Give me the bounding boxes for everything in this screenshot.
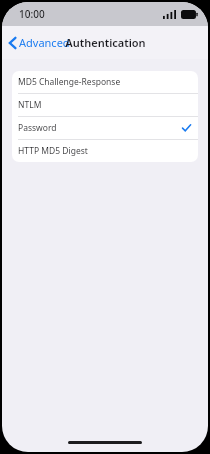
button[interactable]: MD5 Challenge-Response — [12, 71, 198, 93]
staticText: NTLM — [18, 99, 191, 111]
staticText: Authentication — [65, 35, 146, 50]
staticText: MD5 Challenge-Response — [18, 76, 191, 88]
button[interactable]: NTLM — [12, 94, 198, 116]
staticText: 10:00 — [19, 7, 45, 21]
button[interactable]: Password — [12, 117, 198, 139]
button[interactable]: Advanced — [2, 31, 76, 54]
staticText: Password — [18, 122, 182, 134]
other: Selected — [182, 124, 191, 132]
staticText: HTTP MD5 Digest — [18, 145, 191, 157]
staticText: Advanced — [19, 35, 70, 50]
button[interactable]: HTTP MD5 Digest — [12, 140, 198, 162]
